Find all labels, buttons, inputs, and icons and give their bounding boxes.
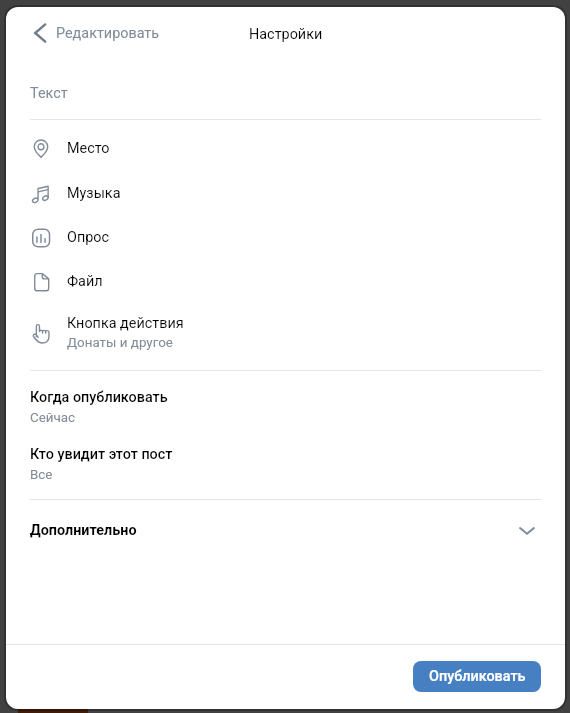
staticText: Музыка	[67, 185, 121, 202]
other: Expand	[515, 518, 539, 542]
button[interactable]: Файл	[6, 259, 565, 303]
staticText: Место	[67, 140, 110, 157]
button[interactable]: Опубликовать	[413, 661, 541, 692]
staticText: Дополнительно	[30, 522, 137, 539]
staticText: Донаты и другое	[67, 335, 173, 351]
staticText: Файл	[67, 273, 103, 290]
staticText: Текст	[30, 85, 68, 102]
button[interactable]: Кнопка действия	[6, 311, 565, 355]
button[interactable]: Опрос	[6, 215, 565, 259]
staticText: Сейчас	[30, 410, 76, 426]
button[interactable]: Музыка	[6, 171, 565, 215]
staticText: Редактировать	[56, 25, 160, 42]
staticText: Опрос	[67, 229, 110, 246]
button[interactable]: Назад	[30, 18, 160, 48]
button[interactable]: Дополнительно	[6, 511, 565, 549]
other: Назад	[30, 23, 50, 43]
button[interactable]: Кто увидит этот пост	[6, 442, 565, 487]
button[interactable]: Место	[6, 126, 565, 170]
staticText: Все	[30, 467, 53, 483]
staticText: Кто увидит этот пост	[30, 446, 173, 463]
staticText: Настройки	[249, 26, 323, 43]
staticText: Когда опубликовать	[30, 389, 168, 406]
button[interactable]: Когда опубликовать	[6, 385, 565, 430]
staticText: Опубликовать	[429, 668, 526, 685]
staticText: Кнопка действия	[67, 315, 184, 332]
